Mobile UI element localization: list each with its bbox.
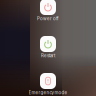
staticText: Emergency mode	[28, 90, 67, 95]
button[interactable]: Emergency mode	[0, 73, 96, 95]
button[interactable]: Restart	[0, 36, 96, 58]
button[interactable]: Power off	[0, 0, 96, 21]
staticText: Restart	[41, 53, 55, 58]
staticText: Power off	[37, 16, 59, 21]
